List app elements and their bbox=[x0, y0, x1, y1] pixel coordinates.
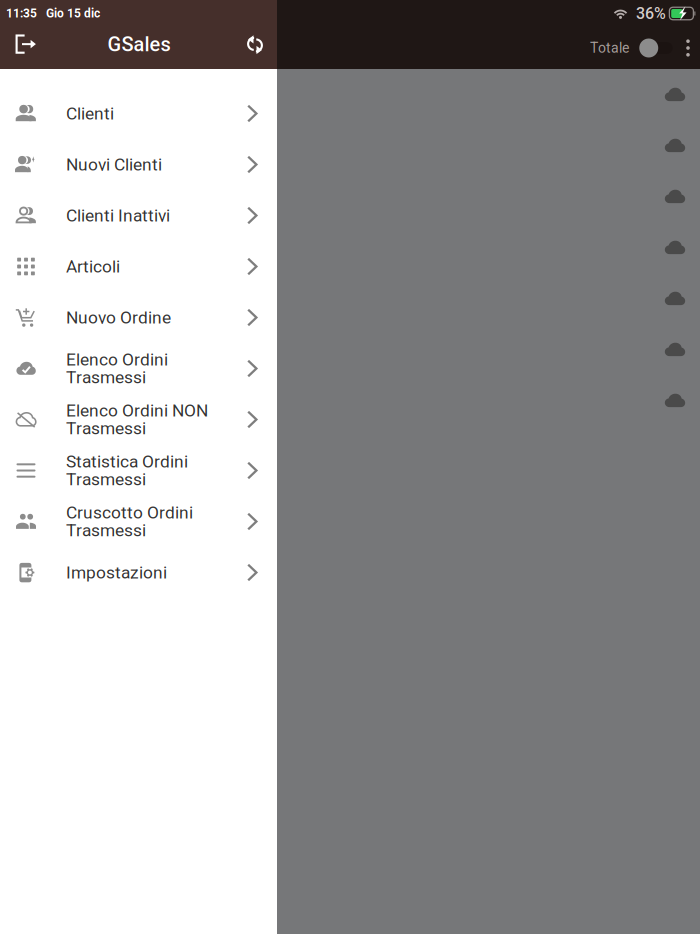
staticText: Nuovo Ordine bbox=[66, 307, 171, 328]
staticText: Elenco Ordini bbox=[66, 349, 168, 370]
staticText: Totale bbox=[590, 40, 629, 56]
staticText: Cruscotto Ordini bbox=[66, 502, 193, 523]
staticText: Articoli bbox=[66, 256, 120, 277]
staticText: Nuovi Clienti bbox=[66, 154, 162, 175]
staticText: Gio 15 dic bbox=[46, 6, 100, 21]
button[interactable]: Statistica Ordini bbox=[0, 445, 277, 496]
button[interactable]: Totale bbox=[629, 38, 673, 58]
staticText: Clienti Inattivi bbox=[66, 205, 170, 226]
button[interactable]: Elenco Ordini NON bbox=[0, 394, 277, 445]
staticText: Trasmessi bbox=[66, 418, 146, 438]
button[interactable]: Impostazioni bbox=[0, 547, 277, 598]
button[interactable]: Elenco Ordini bbox=[0, 343, 277, 394]
button[interactable]: Clienti Inattivi bbox=[0, 190, 277, 241]
staticText: Clienti bbox=[66, 103, 114, 124]
staticText: 36% bbox=[636, 4, 666, 23]
staticText: Elenco Ordini NON bbox=[66, 400, 208, 421]
staticText: Trasmessi bbox=[66, 520, 146, 540]
button[interactable]: Refresh bbox=[235, 24, 275, 64]
button[interactable]: Nuovi Clienti bbox=[0, 139, 277, 190]
button[interactable]: Cruscotto Ordini bbox=[0, 496, 277, 547]
button[interactable]: Logout bbox=[6, 24, 46, 64]
staticText: 11:35 bbox=[6, 6, 37, 21]
button[interactable]: More options bbox=[673, 27, 700, 69]
staticText: Trasmessi bbox=[66, 469, 146, 489]
staticText: GSales bbox=[107, 33, 170, 56]
button[interactable]: Nuovo Ordine bbox=[0, 292, 277, 343]
button[interactable]: Articoli bbox=[0, 241, 277, 292]
staticText: Trasmessi bbox=[66, 367, 146, 387]
button[interactable]: Clienti bbox=[0, 88, 277, 139]
staticText: Impostazioni bbox=[66, 562, 167, 583]
staticText: Statistica Ordini bbox=[66, 451, 188, 472]
